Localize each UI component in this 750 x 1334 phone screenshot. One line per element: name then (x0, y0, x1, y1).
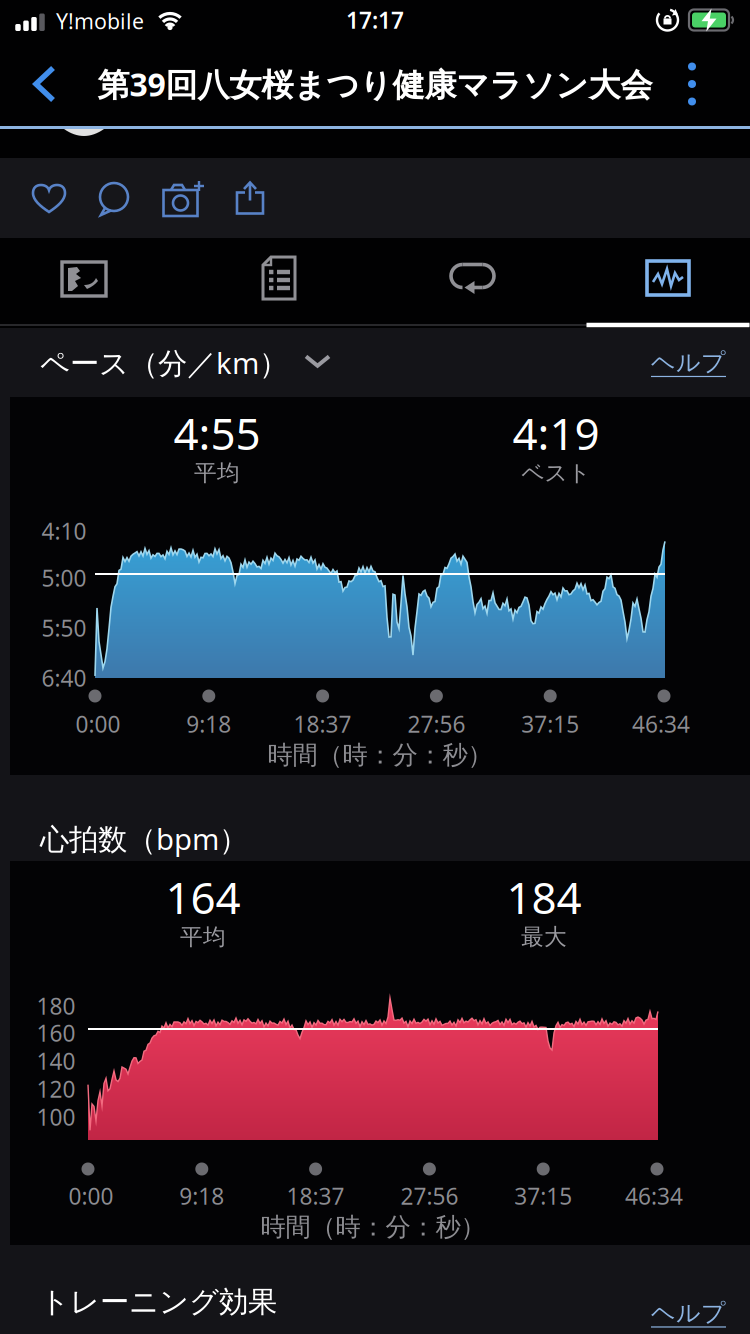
staticText: 37:15 (514, 1181, 572, 1211)
staticText: 37:15 (521, 709, 579, 739)
button[interactable]: Details (185, 240, 372, 316)
staticText: 18:37 (287, 1181, 345, 1211)
staticText: 平均 (180, 923, 226, 951)
button[interactable]: Back (31, 65, 59, 103)
button[interactable]: Add photo (162, 181, 204, 217)
staticText: 160 (36, 1018, 75, 1048)
staticText: Y!mobile (56, 7, 144, 35)
staticText: 100 (36, 1102, 75, 1132)
staticText: 最大 (521, 923, 567, 951)
staticText: 46:34 (625, 1181, 683, 1211)
staticText: 第39回八女桜まつり健康マラソン大会 (97, 63, 652, 105)
button[interactable]: Like (31, 182, 67, 216)
staticText: 時間（時：分：秒） (260, 1211, 485, 1242)
staticText: 4:55 (173, 404, 260, 462)
staticText: 17:17 (346, 5, 404, 35)
staticText: 9:18 (186, 709, 231, 739)
button[interactable]: ペース（分／km） (40, 343, 331, 382)
staticText: ベスト (521, 459, 590, 487)
staticText: 27:56 (400, 1181, 458, 1211)
staticText: 平均 (194, 459, 240, 487)
staticText: 6:40 (41, 663, 86, 693)
staticText: 140 (36, 1046, 75, 1076)
staticText: 4:19 (512, 404, 599, 462)
staticText: 心拍数（bpm） (40, 819, 248, 858)
staticText: 4:10 (41, 516, 86, 546)
staticText: 0:00 (68, 1181, 113, 1211)
staticText: 18:37 (294, 709, 352, 739)
staticText: 180 (36, 991, 75, 1021)
button[interactable]: ヘルプ (651, 1298, 726, 1328)
staticText: 5:00 (41, 563, 86, 593)
staticText: 5:50 (41, 613, 86, 643)
button[interactable]: ヘルプ (651, 348, 726, 377)
staticText: 120 (36, 1074, 75, 1104)
staticText: ヘルプ (651, 1298, 726, 1328)
staticText: トレーニング効果 (40, 1284, 277, 1320)
button[interactable]: Charts (574, 240, 750, 316)
button[interactable]: Share (234, 180, 266, 215)
button[interactable]: Map (0, 240, 177, 316)
button[interactable]: Laps (379, 240, 566, 316)
button[interactable]: More options (677, 62, 707, 106)
staticText: 46:34 (632, 709, 690, 739)
staticText: 164 (165, 868, 240, 926)
staticText: 9:18 (179, 1181, 224, 1211)
staticText: 0:00 (75, 709, 120, 739)
staticText: ペース（分／km） (40, 343, 288, 382)
staticText: ヘルプ (651, 348, 726, 377)
staticText: 時間（時：分：秒） (267, 739, 492, 770)
button[interactable]: Comment (96, 182, 132, 216)
staticText: 27:56 (407, 709, 465, 739)
staticText: 184 (506, 868, 581, 926)
